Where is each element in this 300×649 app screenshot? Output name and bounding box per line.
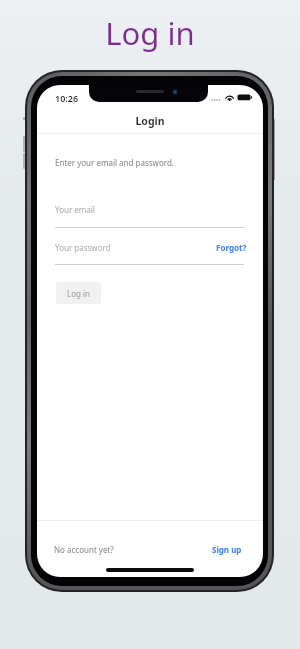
staticText: Log in [67, 288, 91, 299]
staticText: Forgot? [216, 242, 247, 253]
staticText: Login [37, 114, 263, 128]
staticText: Your email [55, 204, 95, 215]
button[interactable]: Forgot? [212, 238, 251, 257]
staticText: No account yet? [54, 544, 114, 555]
staticText: Enter your email and password. [55, 157, 174, 168]
button[interactable]: Sign up [208, 540, 246, 559]
button[interactable]: Log in [56, 282, 101, 304]
staticText: 10:26 [55, 92, 79, 104]
staticText: Log in [0, 12, 300, 54]
staticText: Your password [55, 242, 111, 253]
staticText: Sign up [212, 544, 242, 555]
